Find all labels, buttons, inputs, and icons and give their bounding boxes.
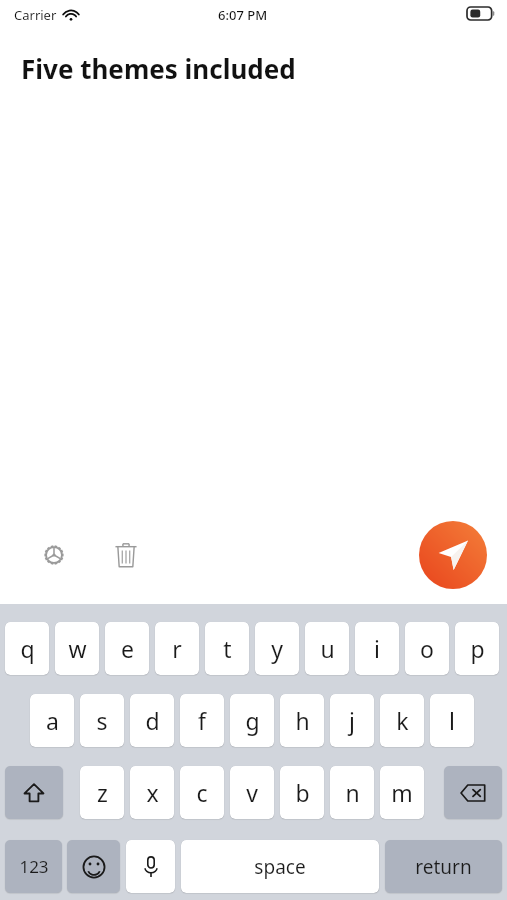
staticText: j [349, 705, 355, 736]
button[interactable]: g [230, 694, 274, 747]
staticText: l [449, 705, 455, 736]
button[interactable]: Backspace [444, 766, 502, 819]
staticText: 6:07 PM [218, 6, 268, 24]
button[interactable]: space [181, 840, 379, 893]
staticText: w [68, 633, 87, 664]
staticText: y [271, 633, 283, 664]
staticText: v [246, 777, 258, 808]
button[interactable]: c [180, 766, 224, 819]
button[interactable]: k [380, 694, 424, 747]
staticText: Carrier [14, 6, 57, 24]
button[interactable]: l [430, 694, 474, 747]
staticText: 123 [19, 855, 49, 878]
staticText: Five themes included [21, 51, 296, 86]
staticText: g [245, 705, 260, 736]
staticText: a [46, 705, 59, 736]
staticText: p [470, 633, 485, 664]
button[interactable]: q [5, 622, 49, 675]
staticText: b [295, 777, 310, 808]
staticText: m [391, 777, 413, 808]
staticText: s [96, 705, 108, 736]
staticText: f [198, 705, 206, 736]
button[interactable]: Emoji [67, 840, 120, 893]
button[interactable]: t [205, 622, 249, 675]
staticText: c [196, 777, 208, 808]
button[interactable]: r [155, 622, 199, 675]
staticText: h [295, 705, 310, 736]
button[interactable]: Delete [104, 533, 148, 577]
staticText: r [172, 633, 182, 664]
button[interactable]: m [380, 766, 424, 819]
button[interactable]: Settings [32, 533, 76, 577]
button[interactable]: e [105, 622, 149, 675]
staticText: k [396, 705, 409, 736]
button[interactable]: f [180, 694, 224, 747]
staticText: n [345, 777, 360, 808]
button[interactable]: h [280, 694, 324, 747]
staticText: x [146, 777, 159, 808]
staticText: return [415, 854, 472, 880]
staticText: z [97, 777, 108, 808]
staticText: q [20, 633, 35, 664]
button[interactable]: d [130, 694, 174, 747]
staticText: u [320, 633, 335, 664]
button[interactable]: p [455, 622, 499, 675]
staticText: e [121, 633, 134, 664]
button[interactable]: Shift [5, 766, 63, 819]
button[interactable]: x [130, 766, 174, 819]
staticText: i [374, 633, 380, 664]
button[interactable]: s [80, 694, 124, 747]
button[interactable]: y [255, 622, 299, 675]
button[interactable]: Send [419, 521, 487, 589]
button[interactable]: a [30, 694, 74, 747]
staticText: t [223, 633, 232, 664]
button[interactable]: Dictate [126, 840, 175, 893]
button[interactable]: u [305, 622, 349, 675]
button[interactable]: o [405, 622, 449, 675]
button[interactable]: w [55, 622, 99, 675]
button[interactable]: b [280, 766, 324, 819]
button[interactable]: return [385, 840, 502, 893]
staticText: d [145, 705, 160, 736]
button[interactable]: i [355, 622, 399, 675]
staticText: o [420, 633, 434, 664]
button[interactable]: v [230, 766, 274, 819]
button[interactable]: z [80, 766, 124, 819]
button[interactable]: 123 [5, 840, 62, 893]
button[interactable]: n [330, 766, 374, 819]
staticText: space [254, 854, 306, 880]
button[interactable]: j [330, 694, 374, 747]
